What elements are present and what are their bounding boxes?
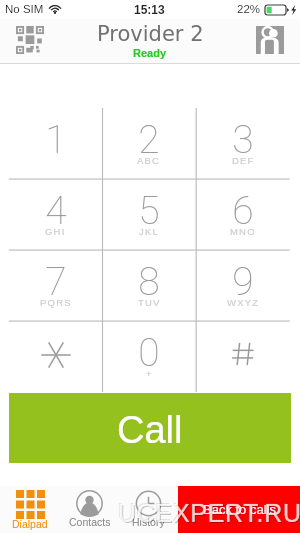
staticText: History	[132, 516, 165, 528]
button[interactable]: Call	[9, 393, 291, 463]
button[interactable]: Contacts	[60, 486, 119, 533]
staticText: 0	[138, 330, 160, 376]
staticText: DEF	[232, 155, 255, 166]
button[interactable]: Scan QR code	[8, 17, 52, 62]
staticText: MNO	[230, 226, 256, 237]
staticText: No SIM	[5, 3, 44, 16]
staticText: PQRS	[40, 297, 72, 308]
staticText: UCEXPERT.RU	[117, 498, 300, 526]
button[interactable]: 0	[102, 321, 196, 392]
staticText: Call	[117, 409, 183, 451]
staticText: 5	[138, 188, 160, 234]
staticText: 9	[232, 259, 254, 305]
button[interactable]: 4	[9, 179, 102, 250]
button[interactable]: 1	[9, 108, 102, 179]
staticText: 2	[138, 117, 160, 163]
staticText: JKL	[139, 226, 159, 237]
staticText: 1	[45, 117, 67, 163]
staticText: +	[146, 368, 153, 379]
button[interactable]: 5	[102, 179, 196, 250]
button[interactable]	[196, 321, 290, 392]
staticText: Contacts	[69, 516, 111, 528]
staticText: WXYZ	[227, 297, 260, 308]
staticText: TUV	[138, 297, 161, 308]
staticText: Back to calls	[203, 502, 276, 517]
staticText: 7	[45, 259, 67, 305]
staticText: 6	[232, 188, 254, 234]
staticText: 22%	[237, 3, 261, 16]
button[interactable]: 7	[9, 250, 102, 321]
button[interactable]: Back to calls	[178, 486, 300, 533]
staticText: UCEXPERT.RU	[118, 499, 300, 527]
staticText: 8	[138, 259, 160, 305]
button[interactable]: 9	[196, 250, 290, 321]
staticText: GHI	[45, 226, 66, 237]
staticText: Dialpad	[12, 518, 48, 530]
staticText: ABC	[137, 155, 161, 166]
staticText: Ready	[133, 47, 167, 59]
button[interactable]: 2	[102, 108, 196, 179]
button[interactable]: History	[119, 486, 178, 533]
button[interactable]	[9, 321, 102, 392]
staticText: Provider 2	[97, 22, 204, 46]
staticText: UCEXPERT.RU	[119, 500, 300, 528]
staticText: 4	[45, 188, 67, 234]
button[interactable]: 8	[102, 250, 196, 321]
button[interactable]: Dialpad	[0, 486, 60, 533]
staticText: 3	[232, 117, 254, 163]
button[interactable]: 6	[196, 179, 290, 250]
staticText: 15:13	[134, 3, 165, 16]
button[interactable]: Contacts	[248, 17, 292, 62]
button[interactable]: 3	[196, 108, 290, 179]
